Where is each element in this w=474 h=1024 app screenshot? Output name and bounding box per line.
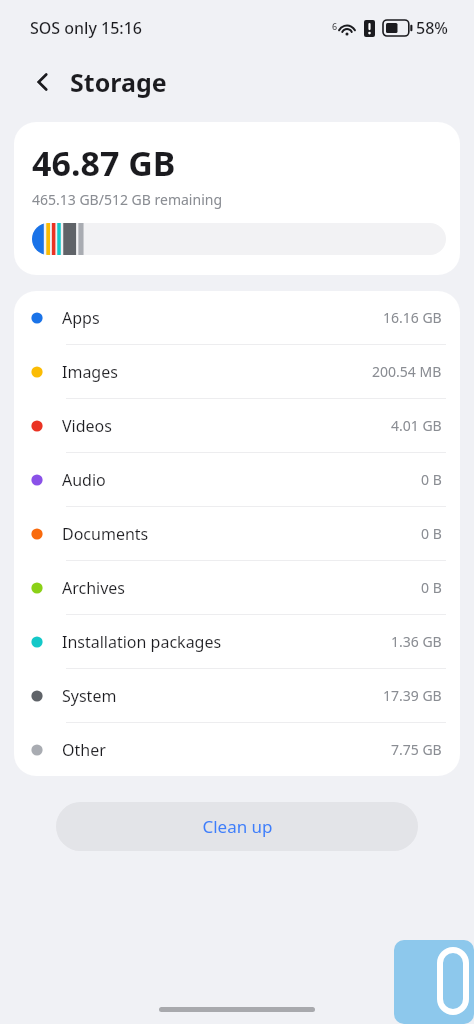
staticText: 0 B	[421, 578, 442, 597]
button[interactable]: Back	[26, 65, 60, 99]
staticText: 0 B	[421, 524, 442, 543]
staticText: Other	[62, 739, 391, 761]
button[interactable]: Clean up	[56, 802, 418, 851]
staticText: 6	[332, 20, 338, 32]
staticText: 0 B	[421, 470, 442, 489]
button[interactable]: Videos	[14, 399, 460, 452]
button[interactable]: Audio	[14, 453, 460, 506]
staticText: SOS only 15:16	[30, 17, 143, 39]
staticText: Clean up	[202, 815, 273, 838]
staticText: Images	[62, 361, 372, 383]
staticText: 200.54 MB	[372, 362, 442, 381]
staticText: Audio	[62, 469, 421, 491]
button[interactable]: 46.87 GB	[14, 122, 460, 275]
staticText: 17.39 GB	[383, 686, 442, 705]
staticText: 16.16 GB	[383, 308, 442, 327]
button[interactable]: Installation packages	[14, 615, 460, 668]
button[interactable]: Other	[14, 723, 460, 776]
button[interactable]: Apps	[14, 291, 460, 344]
staticText: System	[62, 685, 383, 707]
staticText: 58%	[416, 17, 448, 39]
button[interactable]: Archives	[14, 561, 460, 614]
staticText: 46.87 GB	[32, 140, 176, 186]
staticText: Installation packages	[62, 631, 391, 653]
button[interactable]: Images	[14, 345, 460, 398]
staticText: 1.36 GB	[391, 632, 442, 651]
staticText: Videos	[62, 415, 391, 437]
staticText: Storage	[70, 65, 167, 99]
staticText: 4.01 GB	[391, 416, 442, 435]
button[interactable]: System	[14, 669, 460, 722]
staticText: Apps	[62, 307, 383, 329]
staticText: Archives	[62, 577, 421, 599]
staticText: 7.75 GB	[391, 740, 442, 759]
staticText: 465.13 GB/512 GB remaining	[32, 190, 223, 209]
button[interactable]: Documents	[14, 507, 460, 560]
staticText: Documents	[62, 523, 421, 545]
